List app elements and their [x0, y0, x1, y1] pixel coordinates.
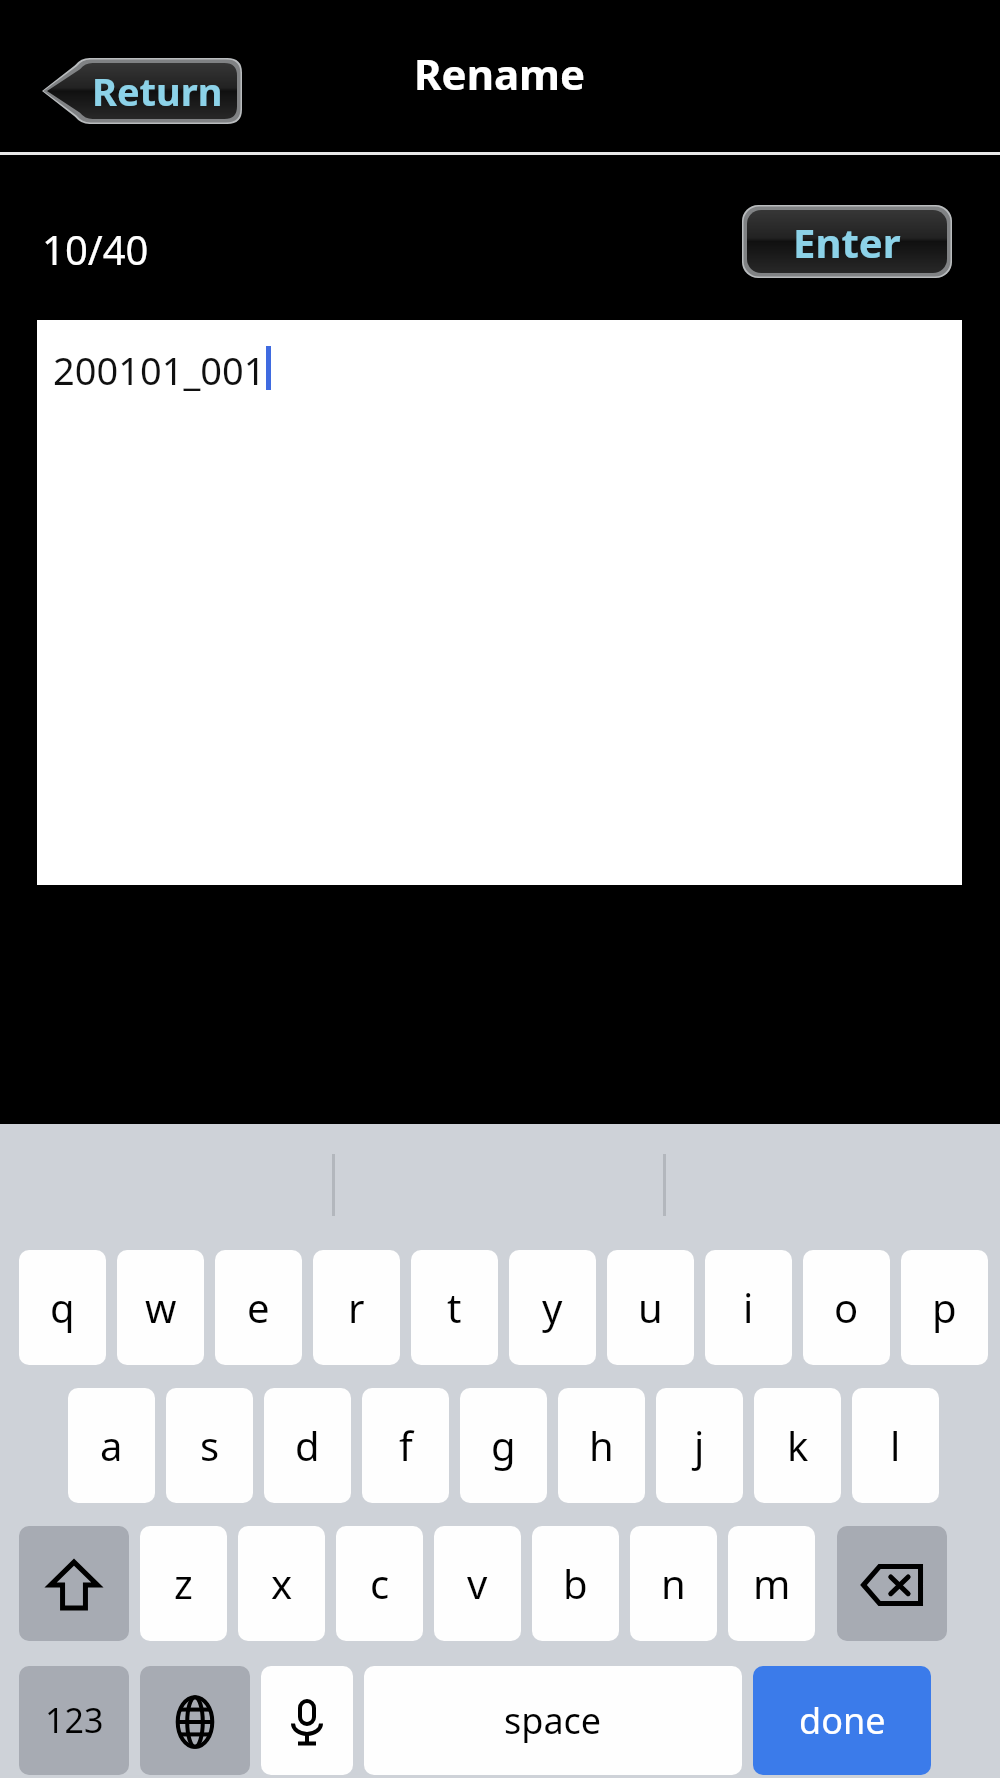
- staticText: p: [932, 1280, 957, 1334]
- staticText: u: [638, 1280, 663, 1334]
- button[interactable]: j: [656, 1388, 743, 1506]
- button[interactable]: 200101_001: [37, 320, 962, 885]
- button[interactable]: l: [852, 1388, 939, 1506]
- staticText: k: [787, 1418, 809, 1472]
- button[interactable]: t: [411, 1250, 498, 1368]
- button[interactable]: v: [434, 1526, 521, 1644]
- staticText: h: [589, 1418, 614, 1472]
- button[interactable]: e: [215, 1250, 302, 1368]
- button[interactable]: q: [19, 1250, 106, 1368]
- button[interactable]: g: [460, 1388, 547, 1506]
- button[interactable]: done: [753, 1666, 931, 1778]
- staticText: e: [247, 1280, 270, 1334]
- button[interactable]: Voice input: [261, 1666, 353, 1778]
- button[interactable]: b: [532, 1526, 619, 1644]
- staticText: Return: [92, 65, 223, 117]
- staticText: l: [890, 1418, 901, 1472]
- staticText: x: [271, 1556, 293, 1610]
- staticText: i: [743, 1280, 754, 1334]
- button[interactable]: space: [364, 1666, 742, 1778]
- button[interactable]: Enter: [742, 205, 952, 278]
- staticText: Enter: [793, 215, 901, 269]
- staticText: z: [174, 1556, 193, 1610]
- staticText: Rename: [414, 45, 586, 102]
- button[interactable]: y: [509, 1250, 596, 1368]
- staticText: 200101_001: [53, 344, 266, 396]
- staticText: m: [753, 1556, 791, 1610]
- button[interactable]: Change keyboard: [140, 1666, 250, 1778]
- staticText: q: [50, 1280, 75, 1334]
- button[interactable]: c: [336, 1526, 423, 1644]
- staticText: 123: [45, 1697, 104, 1743]
- staticText: g: [491, 1418, 516, 1472]
- staticText: a: [100, 1418, 123, 1472]
- staticText: f: [399, 1418, 413, 1472]
- button[interactable]: a: [68, 1388, 155, 1506]
- button[interactable]: Return: [42, 58, 242, 124]
- staticText: 10/40: [42, 222, 149, 276]
- staticText: y: [542, 1280, 563, 1334]
- button[interactable]: k: [754, 1388, 841, 1506]
- staticText: n: [661, 1556, 686, 1610]
- button[interactable]: d: [264, 1388, 351, 1506]
- staticText: r: [348, 1280, 365, 1334]
- staticText: w: [145, 1280, 177, 1334]
- staticText: space: [504, 1696, 602, 1745]
- staticText: b: [563, 1556, 588, 1610]
- button[interactable]: s: [166, 1388, 253, 1506]
- staticText: j: [694, 1418, 705, 1472]
- staticText: o: [834, 1280, 859, 1334]
- staticText: s: [200, 1418, 220, 1472]
- staticText: done: [799, 1696, 886, 1745]
- button[interactable]: n: [630, 1526, 717, 1644]
- button[interactable]: Backspace: [837, 1526, 947, 1644]
- button[interactable]: x: [238, 1526, 325, 1644]
- button[interactable]: r: [313, 1250, 400, 1368]
- button[interactable]: u: [607, 1250, 694, 1368]
- button[interactable]: p: [901, 1250, 988, 1368]
- button[interactable]: w: [117, 1250, 204, 1368]
- staticText: c: [370, 1556, 390, 1610]
- button[interactable]: o: [803, 1250, 890, 1368]
- button[interactable]: Shift: [19, 1526, 129, 1644]
- staticText: t: [447, 1280, 462, 1334]
- button[interactable]: h: [558, 1388, 645, 1506]
- button[interactable]: i: [705, 1250, 792, 1368]
- button[interactable]: z: [140, 1526, 227, 1644]
- button[interactable]: f: [362, 1388, 449, 1506]
- button[interactable]: 123: [19, 1666, 129, 1778]
- staticText: v: [467, 1556, 488, 1610]
- button[interactable]: m: [728, 1526, 815, 1644]
- staticText: d: [295, 1418, 320, 1472]
